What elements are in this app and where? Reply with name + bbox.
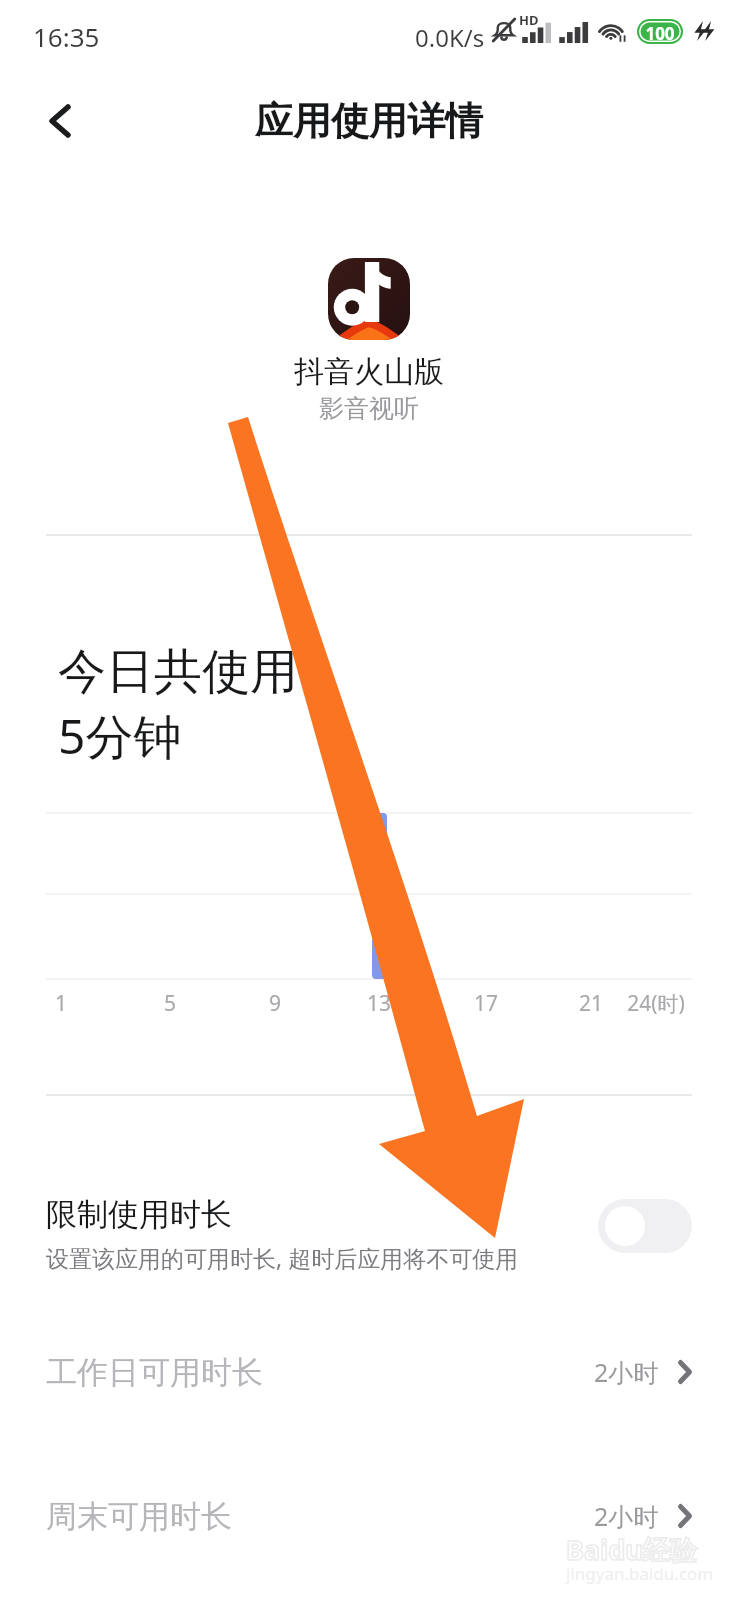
button[interactable]: 限制使用时长 [0, 1186, 738, 1282]
staticText: 2小时 [594, 1355, 659, 1389]
button[interactable]: 周末可用时长 [0, 1468, 738, 1564]
staticText: 1 [21, 989, 101, 1018]
button[interactable]: 工作日可用时长 [0, 1324, 738, 1420]
staticText: 100 [637, 22, 683, 45]
staticText: 设置该应用的可用时长, 超时后应用将不可使用 [46, 1242, 519, 1273]
staticText: 17 [446, 989, 526, 1018]
staticText: 周末可用时长 [46, 1497, 594, 1536]
staticText: 限制使用时长 [46, 1195, 232, 1234]
staticText: 13 [339, 989, 419, 1018]
staticText: 抖音火山版 [294, 353, 444, 391]
staticText: 24(时) [616, 989, 696, 1018]
staticText: 影音视听 [319, 393, 419, 424]
staticText: 5分钟 [58, 703, 182, 769]
staticText: 0.0K/s [415, 21, 485, 54]
button[interactable]: 限制使用时长开关 [598, 1199, 692, 1253]
staticText: 今日共使用 [58, 642, 298, 702]
button[interactable]: Back [26, 87, 94, 155]
staticText: 工作日可用时长 [46, 1353, 594, 1392]
staticText: Baidu经验 [566, 1531, 697, 1568]
staticText: HD [519, 11, 539, 29]
staticText: 21 [551, 989, 631, 1018]
staticText: 应用使用详情 [255, 97, 483, 145]
staticText: 5 [130, 989, 210, 1018]
staticText: 9 [235, 989, 315, 1018]
staticText: 2小时 [594, 1499, 659, 1533]
staticText: 16:35 [33, 19, 100, 54]
staticText: jingyan.baidu.com [566, 1562, 714, 1585]
